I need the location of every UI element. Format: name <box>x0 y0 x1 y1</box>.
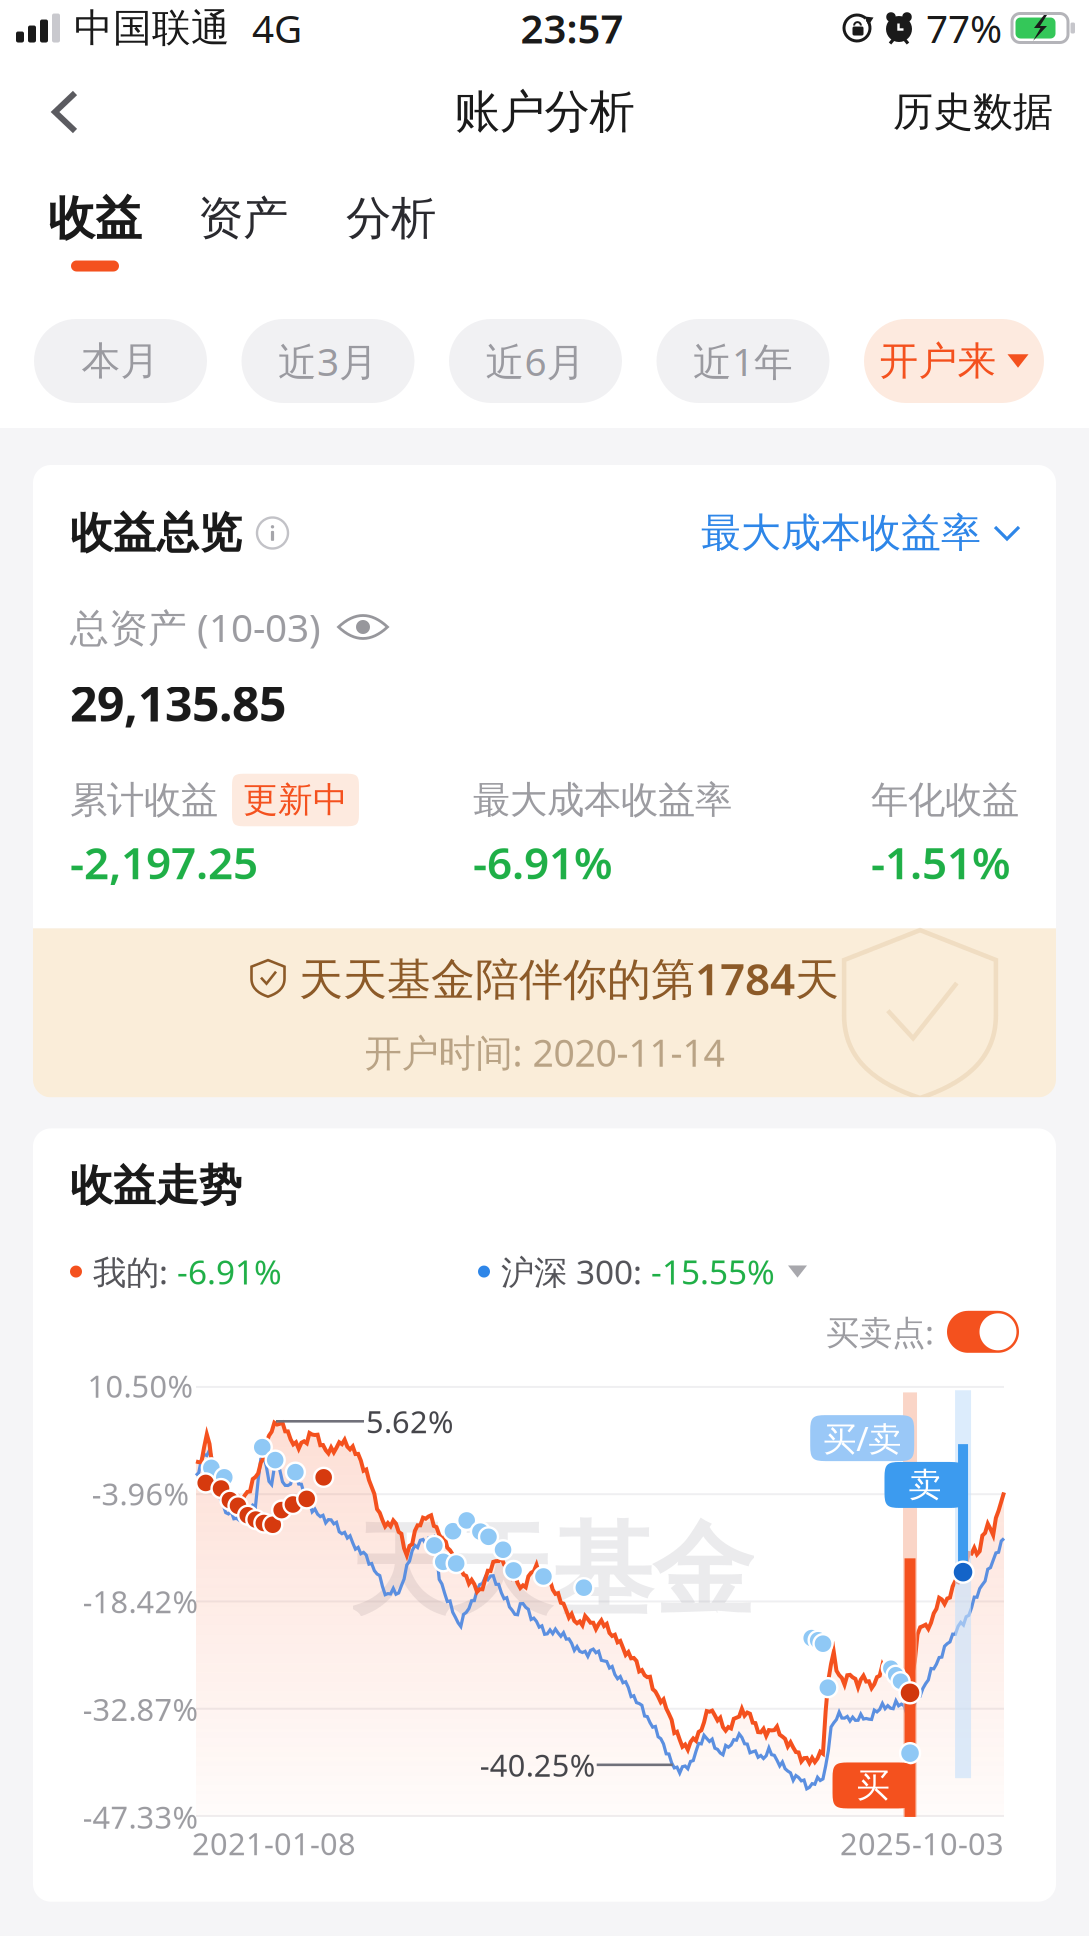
button[interactable]: 历史数据 <box>879 66 1067 158</box>
staticText: 4G <box>252 2 302 54</box>
staticText: 资产 <box>198 191 288 246</box>
button[interactable]: 近3月 <box>241 319 414 403</box>
staticText: 我的: <box>93 1249 177 1294</box>
staticText: 2021-01-08 <box>192 1823 356 1864</box>
button[interactable]: 本月 <box>34 319 207 403</box>
staticText: -2,197.25 <box>70 833 258 891</box>
staticText: 天天基金 <box>349 1509 753 1634</box>
staticText: 中国联通 <box>74 4 230 52</box>
staticText: -6.91% <box>177 1249 282 1294</box>
button[interactable]: 最大成本收益率 <box>701 508 1019 557</box>
staticText: 10.50% <box>87 1366 192 1406</box>
staticText: 2025-10-03 <box>840 1823 1004 1864</box>
staticText: 近6月 <box>485 335 585 387</box>
staticText: 77% <box>926 2 1002 54</box>
staticText: -47.33% <box>82 1797 197 1837</box>
staticText: 本月 <box>81 337 159 385</box>
button[interactable]: 买 <box>832 1762 913 1808</box>
button[interactable]: 买/卖 <box>810 1415 914 1461</box>
staticText: 开户来 <box>879 337 996 385</box>
staticText: 沪深 300: <box>501 1249 651 1294</box>
staticText: 收益总览 <box>70 507 242 559</box>
button[interactable]: 近6月 <box>449 319 622 403</box>
staticText: 更新中 <box>243 779 348 821</box>
button[interactable]: 返回 <box>22 66 108 158</box>
staticText: -3.96% <box>91 1473 188 1514</box>
staticText: 29,135.85 <box>70 671 286 735</box>
staticText: 天天基金陪伴你的第1784天 <box>299 949 839 1007</box>
staticText: -18.42% <box>82 1581 197 1622</box>
button[interactable]: 买卖点开关 <box>934 1311 1019 1353</box>
staticText: 账户分析 <box>454 84 634 140</box>
button[interactable]: 分析 <box>317 190 465 246</box>
button[interactable]: 沪深 300: <box>478 1249 807 1294</box>
staticText: 年化收益 <box>871 777 1019 823</box>
staticText: 买卖点: <box>826 1310 934 1354</box>
staticText: 开户时间: 2020-11-14 <box>364 1027 724 1077</box>
staticText: 近3月 <box>278 335 378 387</box>
button[interactable]: 开户来 <box>864 319 1044 403</box>
staticText: 买/卖 <box>823 1416 901 1460</box>
button[interactable]: 收益 <box>21 190 169 271</box>
button[interactable]: 隐藏金额 <box>321 614 389 640</box>
staticText: 最大成本收益率 <box>473 777 732 823</box>
staticText: 最大成本收益率 <box>701 508 981 557</box>
staticText: -32.87% <box>82 1689 197 1729</box>
staticText: 5.62% <box>366 1401 453 1442</box>
staticText: -40.25% <box>480 1744 595 1785</box>
staticText: -6.91% <box>473 833 613 891</box>
staticText: 卖 <box>908 1464 941 1505</box>
staticText: 收益 <box>48 190 142 247</box>
staticText: -1.51% <box>871 833 1011 891</box>
staticText: 分析 <box>346 191 436 246</box>
staticText: 近1年 <box>693 335 793 387</box>
button[interactable]: 卖 <box>884 1462 965 1508</box>
staticText: 23:57 <box>520 1 623 54</box>
staticText: 历史数据 <box>893 87 1053 136</box>
staticText: -15.55% <box>651 1249 775 1294</box>
staticText: 总资产 (10-03) <box>70 601 321 653</box>
button[interactable]: 资产 <box>169 190 317 246</box>
staticText: 买 <box>856 1765 889 1806</box>
staticText: 收益走势 <box>70 1159 242 1212</box>
button[interactable]: 近1年 <box>656 319 829 403</box>
staticText: 累计收益 <box>70 777 218 823</box>
